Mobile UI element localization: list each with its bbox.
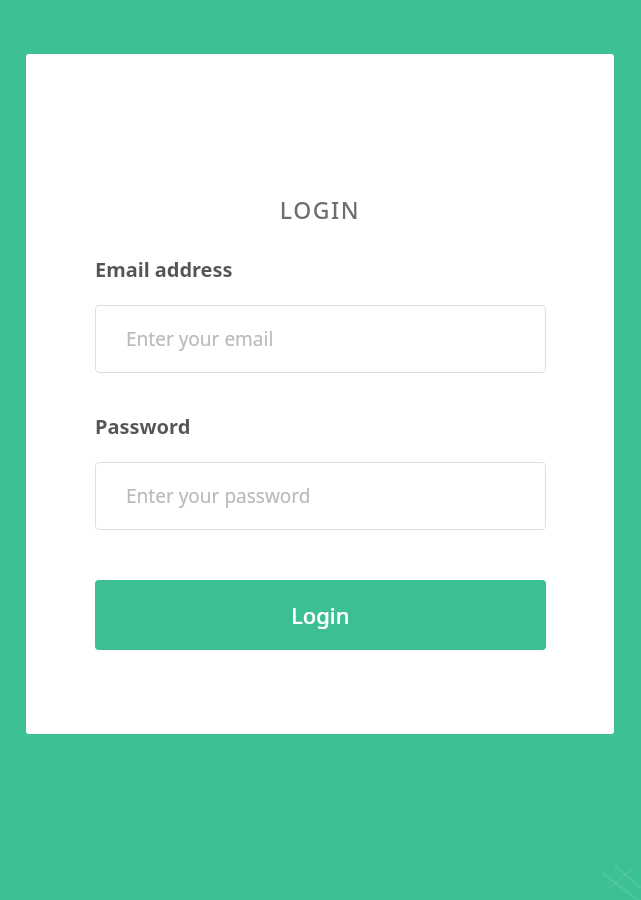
- button[interactable]: Enter your password: [95, 462, 546, 530]
- staticText: Enter your email: [126, 326, 274, 352]
- staticText: Email address: [95, 256, 233, 283]
- staticText: Password: [95, 413, 191, 440]
- staticText: Enter your password: [126, 483, 311, 509]
- button[interactable]: Login: [95, 580, 546, 650]
- staticText: LOGIN: [26, 194, 614, 225]
- button[interactable]: Enter your email: [95, 305, 546, 373]
- staticText: Login: [291, 600, 350, 630]
